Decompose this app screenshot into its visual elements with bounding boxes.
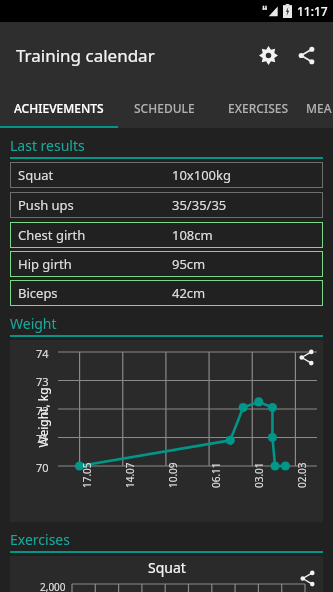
staticText: 95cm [172,255,206,273]
staticText: Weight, kg [34,386,50,447]
button[interactable]: Chest girth [10,222,323,248]
staticText: Training calendar [16,44,155,67]
button[interactable]: EXERCISES [210,88,306,128]
button[interactable]: Hip girth [10,251,323,277]
button[interactable]: ACHIEVEMENTS [0,88,118,128]
button[interactable]: Squat [10,556,323,592]
staticText: MEASUREMENTS [306,100,333,116]
button[interactable]: Settings [251,38,285,72]
staticText: 74 [36,346,49,361]
staticText: ACHIEVEMENTS [14,100,104,116]
staticText: 02.03 [295,462,309,488]
staticText: Squat [18,166,54,184]
button[interactable]: Push ups [10,192,323,218]
button[interactable]: Biceps [10,280,323,306]
staticText: 42cm [172,284,206,302]
staticText: 17.05 [80,462,94,488]
staticText: Chest girth [18,226,86,244]
staticText: Squat [148,558,186,577]
staticText: 73 [36,374,49,389]
button[interactable]: Share squat chart [295,566,319,590]
staticText: EXERCISES [228,100,289,116]
staticText: 10x100kg [172,166,231,184]
button[interactable]: SCHEDULE [118,88,210,128]
button[interactable]: Squat [10,162,323,188]
staticText: 71 [36,431,49,446]
button[interactable]: Share weight chart [293,344,319,370]
staticText: 35/35/35 [172,196,227,214]
staticText: 10.09 [166,462,180,488]
staticText: 70 [36,460,49,475]
staticText: Weight [10,314,57,333]
staticText: 14.07 [123,462,137,488]
staticText: SCHEDULE [134,100,195,116]
button[interactable]: Weight, kg [10,340,323,522]
staticText: 72 [36,403,49,418]
staticText: 06.11 [209,462,223,488]
staticText: Biceps [18,284,58,302]
staticText: 2,000 [40,580,66,592]
staticText: 03.01 [252,462,266,488]
button[interactable]: Share [289,38,323,72]
staticText: Exercises [10,530,70,549]
staticText: Last results [10,136,85,155]
button[interactable]: MEASUREMENTS [306,88,333,128]
staticText: Push ups [18,196,74,214]
staticText: Hip girth [18,255,72,273]
staticText: 11:17 [297,3,328,19]
staticText: 108cm [172,226,213,244]
